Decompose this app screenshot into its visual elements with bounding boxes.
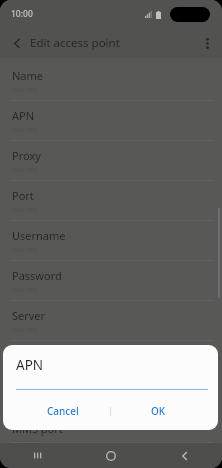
- button[interactable]: Proxy: [0, 141, 222, 181]
- staticText: Edit access point: [30, 35, 120, 51]
- staticText: APN: [12, 108, 35, 123]
- button[interactable]: MMS port: [0, 421, 222, 443]
- button[interactable]: OK: [111, 398, 206, 424]
- staticText: Cancel: [47, 404, 79, 418]
- button[interactable]: Home: [74, 443, 148, 468]
- staticText: Server: [12, 308, 46, 323]
- button[interactable]: MMS proxy: [0, 381, 222, 421]
- button[interactable]: Username: [0, 221, 222, 261]
- button[interactable]: Recent apps: [0, 443, 74, 468]
- staticText: Proxy: [12, 148, 41, 163]
- staticText: MMS port: [12, 421, 63, 436]
- button[interactable]: Back: [148, 443, 222, 468]
- button[interactable]: APN: [0, 101, 222, 141]
- button[interactable]: Cancel: [15, 398, 110, 424]
- button[interactable]: MMSC: [0, 341, 222, 381]
- staticText: Port: [12, 188, 34, 203]
- button[interactable]: Back: [8, 34, 26, 52]
- staticText: MMS proxy: [12, 388, 70, 403]
- staticText: Not set: [12, 364, 38, 374]
- staticText: OK: [151, 404, 166, 418]
- button[interactable]: Password: [0, 261, 222, 301]
- staticText: 10:00: [11, 8, 33, 20]
- staticText: Username: [12, 228, 66, 243]
- staticText: Password: [12, 268, 62, 283]
- button[interactable]: Port: [0, 181, 222, 221]
- button[interactable]: Name: [0, 61, 222, 101]
- staticText: MMSC: [12, 348, 45, 363]
- button[interactable]: Server: [0, 301, 222, 341]
- staticText: APN: [16, 356, 44, 374]
- staticText: Name: [12, 68, 44, 83]
- button[interactable]: More options: [198, 34, 216, 52]
